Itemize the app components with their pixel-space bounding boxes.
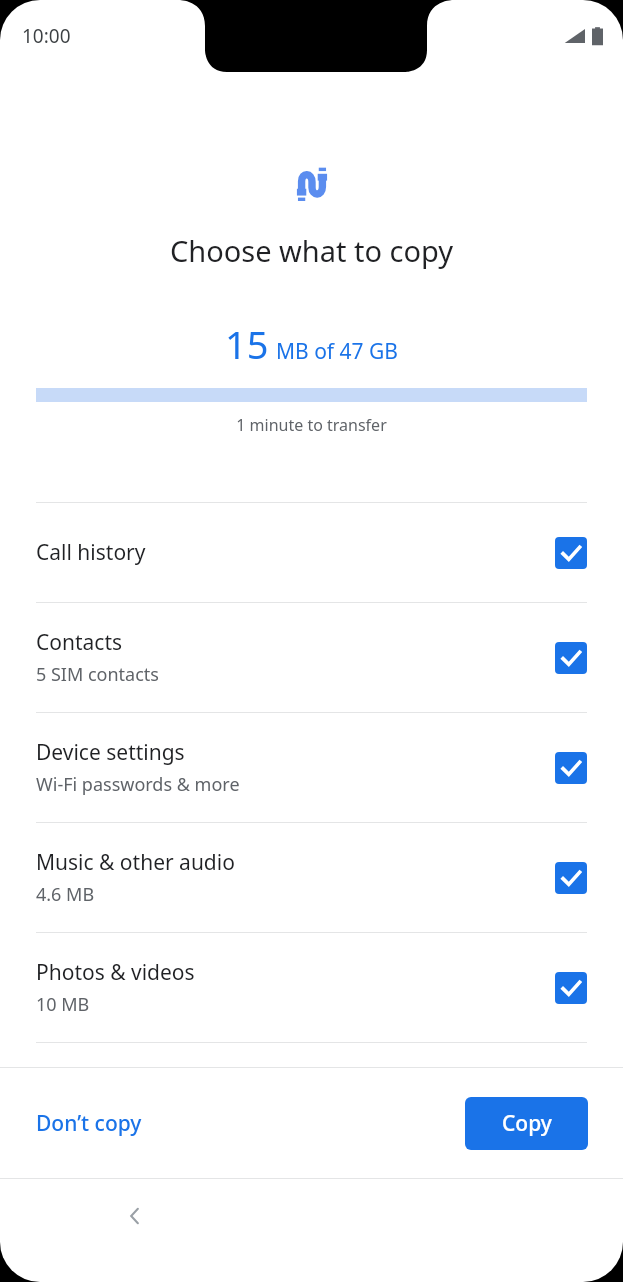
staticText: 10 MB <box>36 992 90 1017</box>
button[interactable]: Music & other audio <box>0 823 623 932</box>
staticText: Music & other audio <box>36 848 235 877</box>
button[interactable]: Device settings <box>0 713 623 822</box>
button[interactable]: Copy <box>465 1097 588 1150</box>
button[interactable]: Back <box>108 1189 162 1243</box>
staticText: Copy <box>502 1109 552 1138</box>
staticText: 5 SIM contacts <box>36 662 159 687</box>
staticText: Photos & videos <box>36 958 195 987</box>
staticText: 15 <box>225 318 269 370</box>
button[interactable]: Checked <box>555 752 587 784</box>
button[interactable]: Don’t copy <box>22 1099 156 1148</box>
staticText: 4.6 MB <box>36 882 95 907</box>
staticText: 1 minute to transfer <box>0 414 623 436</box>
staticText: Wi-Fi passwords & more <box>36 772 240 797</box>
button[interactable]: Call history <box>0 503 623 602</box>
staticText: MB of 47 GB <box>276 337 398 366</box>
staticText: 10:00 <box>22 23 71 49</box>
staticText: Choose what to copy <box>0 231 623 270</box>
staticText: Contacts <box>36 628 123 657</box>
button[interactable]: Contacts <box>0 603 623 712</box>
button[interactable]: Checked <box>555 862 587 894</box>
button[interactable]: Checked <box>555 972 587 1004</box>
button[interactable]: Checked <box>555 537 587 569</box>
button[interactable]: Checked <box>555 642 587 674</box>
staticText: Call history <box>36 538 146 567</box>
staticText: Device settings <box>36 738 185 767</box>
button[interactable]: Photos & videos <box>0 933 623 1042</box>
staticText: Don’t copy <box>36 1109 142 1138</box>
